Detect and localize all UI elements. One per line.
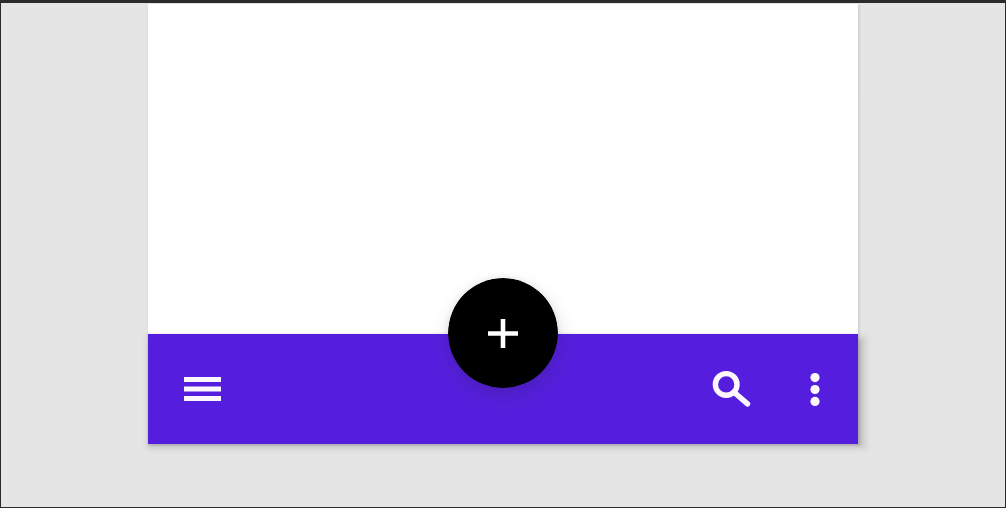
button[interactable]: More options [785,359,845,419]
button[interactable]: Search [701,359,761,419]
button[interactable]: Menu [172,359,232,419]
button[interactable]: Add [448,278,558,388]
